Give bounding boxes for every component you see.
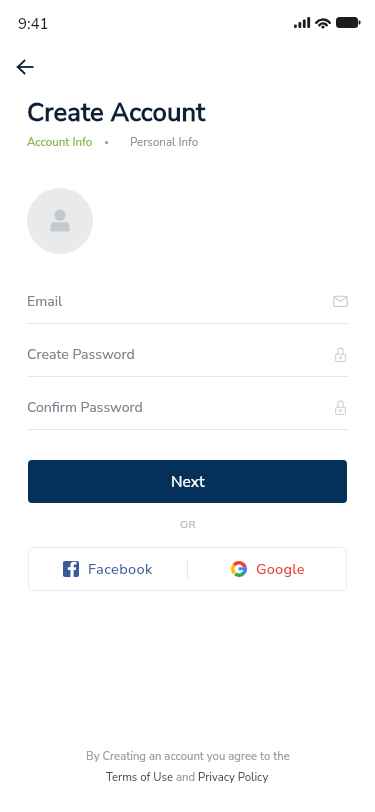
staticText: OR (180, 517, 196, 531)
button[interactable]: Facebook (28, 547, 187, 591)
button[interactable]: Add profile photo (27, 188, 93, 254)
staticText: Create Account (27, 95, 206, 130)
button[interactable]: Google (188, 547, 347, 591)
staticText: Confirm Password (27, 398, 334, 417)
button[interactable]: Personal Info (130, 134, 199, 150)
staticText: Create Password (27, 345, 334, 364)
staticText: Google (256, 559, 305, 579)
button[interactable]: Back (2, 44, 47, 89)
staticText: 9:41 (18, 14, 49, 34)
button[interactable]: Next (28, 460, 347, 503)
button[interactable]: Email (27, 279, 348, 324)
staticText: Next (171, 471, 205, 492)
staticText: By Creating an account you agree to the (86, 749, 290, 764)
staticText: Email (27, 292, 333, 311)
button[interactable]: Create Password (27, 332, 348, 377)
staticText: Facebook (88, 559, 153, 579)
button[interactable]: Confirm Password (27, 385, 348, 430)
staticText: Terms of Use and Privacy Policy (106, 770, 269, 785)
button[interactable]: Account Info (27, 134, 93, 150)
